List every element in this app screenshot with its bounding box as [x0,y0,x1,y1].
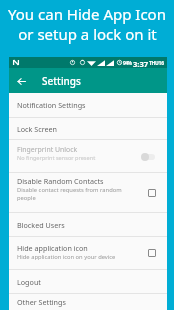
staticText: Lock Screen [17,124,58,134]
button[interactable]: Hide application icon [9,237,167,269]
staticText: Other Settings [17,297,66,307]
staticText: Notification Settings [17,100,86,110]
staticText: THU16 [149,60,164,67]
staticText: You can Hide App Icon [8,4,166,24]
button[interactable]: Disable Random Contacts [9,173,167,212]
staticText: or setup a lock on it [18,24,157,44]
staticText: Logout [17,277,41,287]
button[interactable]: Other Settings [9,294,167,310]
staticText: 3:37 [133,59,149,69]
button[interactable]: Blocked Users [9,213,167,236]
staticText: Blocked Users [17,220,65,230]
staticText: Settings [42,74,81,88]
staticText: No fingerprint sensor present [17,154,96,162]
button[interactable]: Logout [9,270,167,293]
button[interactable]: Lock Screen [9,118,167,139]
staticText: Hide application icon [17,243,88,253]
button[interactable]: Notification Settings [9,93,167,117]
staticText: Fingerprint Unlock [17,145,78,154]
staticText: Disable Random Contacts [17,176,104,186]
button[interactable]: Fingerprint Unlock [9,140,167,172]
staticText: 94% [123,60,132,67]
staticText: Hide application icon on your device [17,253,116,261]
button[interactable]: Back [12,72,30,90]
staticText: Disable contact requests from random peo… [17,186,125,202]
